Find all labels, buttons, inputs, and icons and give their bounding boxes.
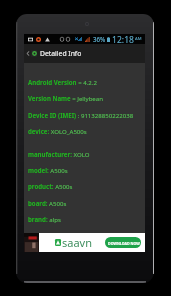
- staticText: Device ID (IMEI) : 911328850222038: [28, 111, 134, 119]
- button[interactable]: Back: [24, 44, 145, 63]
- staticText: Version Name = Jellybean: [28, 94, 103, 102]
- staticText: product: A500s: [28, 182, 73, 190]
- staticText: Android Version = 4.2.2: [28, 78, 97, 86]
- staticText: Detailed Info: [40, 49, 82, 58]
- staticText: DOWNLOAD NOW: [108, 241, 140, 246]
- staticText: model: A500s: [28, 166, 68, 174]
- staticText: 36%: [93, 35, 106, 43]
- staticText: device: XOLO_A500s: [28, 127, 87, 135]
- button[interactable]: saavn: [24, 233, 145, 252]
- staticText: 12:18: [112, 34, 134, 44]
- staticText: brand: alps: [28, 215, 61, 223]
- button[interactable]: Back: [25, 47, 31, 60]
- staticText: board: A500s: [28, 199, 67, 207]
- staticText: manufacturer: XOLO: [28, 150, 90, 158]
- staticText: saavn: [62, 235, 92, 250]
- staticText: AM: [135, 36, 142, 42]
- button[interactable]: DOWNLOAD NOW: [105, 237, 141, 248]
